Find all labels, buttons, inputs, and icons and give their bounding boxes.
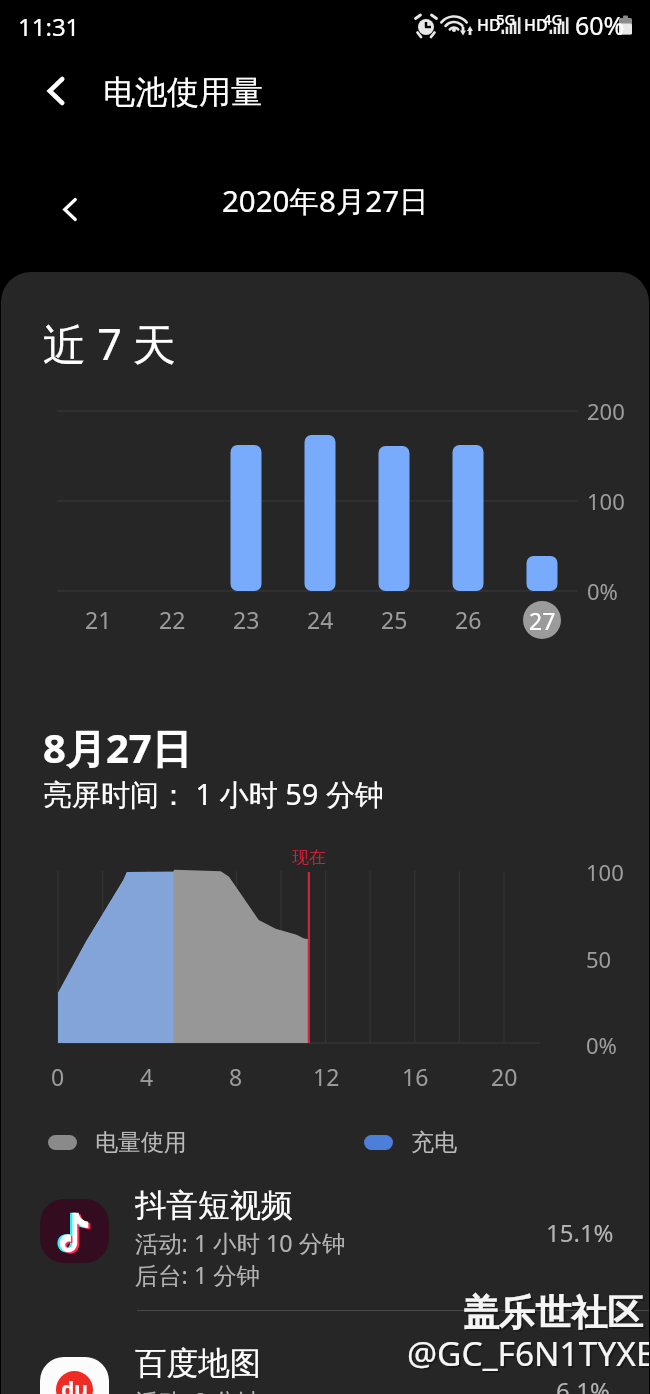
staticText: 亮屏时间： 1 小时 59 分钟 — [43, 774, 384, 814]
staticText: 16 — [402, 1061, 429, 1091]
staticText: 27 — [529, 605, 556, 636]
staticText: 8月27日 — [43, 720, 192, 775]
staticText: 25 — [381, 604, 408, 634]
staticText: 0% — [586, 1030, 617, 1060]
staticText: 活动: 1 小时 10 分钟 — [135, 1227, 346, 1259]
button[interactable]: 27 — [523, 601, 561, 639]
staticText: du — [61, 1375, 88, 1394]
staticText: @GC_F6N1TYXB — [407, 1330, 649, 1376]
staticText: HD — [524, 14, 548, 36]
staticText: 200 — [587, 396, 625, 426]
staticText: 2020年8月27日 — [222, 180, 429, 220]
staticText: 百度地图 — [135, 1344, 261, 1384]
staticText: 21 — [85, 604, 112, 634]
button[interactable]: Previous day — [47, 186, 93, 232]
staticText: 15.1% — [546, 1216, 614, 1249]
staticText: HD — [477, 14, 501, 36]
staticText: 后台: 1 分钟 — [135, 1259, 260, 1291]
staticText: 23 — [233, 604, 260, 634]
staticText: 盖乐世社区 — [463, 1290, 643, 1335]
staticText: 4G — [543, 9, 563, 29]
staticText: 4 — [140, 1061, 154, 1091]
staticText: 现在 — [292, 847, 326, 868]
staticText: 8 — [229, 1061, 243, 1091]
staticText: 20 — [491, 1061, 518, 1091]
staticText: 26 — [455, 604, 482, 634]
staticText: 5G — [496, 9, 516, 29]
staticText: 6.1% — [556, 1374, 610, 1394]
button[interactable]: 抖音短视频 — [1, 1175, 649, 1310]
staticText: 电池使用量 — [103, 72, 263, 112]
staticText: 0% — [587, 576, 618, 606]
staticText: 12 — [313, 1061, 340, 1091]
staticText: 抖音短视频 — [135, 1186, 293, 1226]
staticText: 电量使用 — [95, 1128, 187, 1157]
staticText: 11:31 — [18, 10, 80, 43]
button[interactable]: Back — [28, 63, 84, 119]
staticText: 近 7 天 — [43, 314, 176, 373]
staticText: 盖乐世社区 — [465, 1292, 645, 1337]
staticText: 0 — [51, 1061, 65, 1091]
staticText: @GC_F6N1TYXB — [409, 1332, 649, 1378]
button[interactable]: du — [1, 1333, 649, 1394]
staticText: 100 — [587, 486, 625, 516]
staticText: 24 — [307, 604, 334, 634]
staticText: 60% — [575, 8, 625, 42]
staticText: 活动: 9 分钟 — [135, 1385, 260, 1394]
staticText: 50 — [586, 944, 612, 974]
staticText: 100 — [586, 857, 624, 887]
staticText: 充电 — [411, 1128, 457, 1157]
staticText: 22 — [159, 604, 186, 634]
